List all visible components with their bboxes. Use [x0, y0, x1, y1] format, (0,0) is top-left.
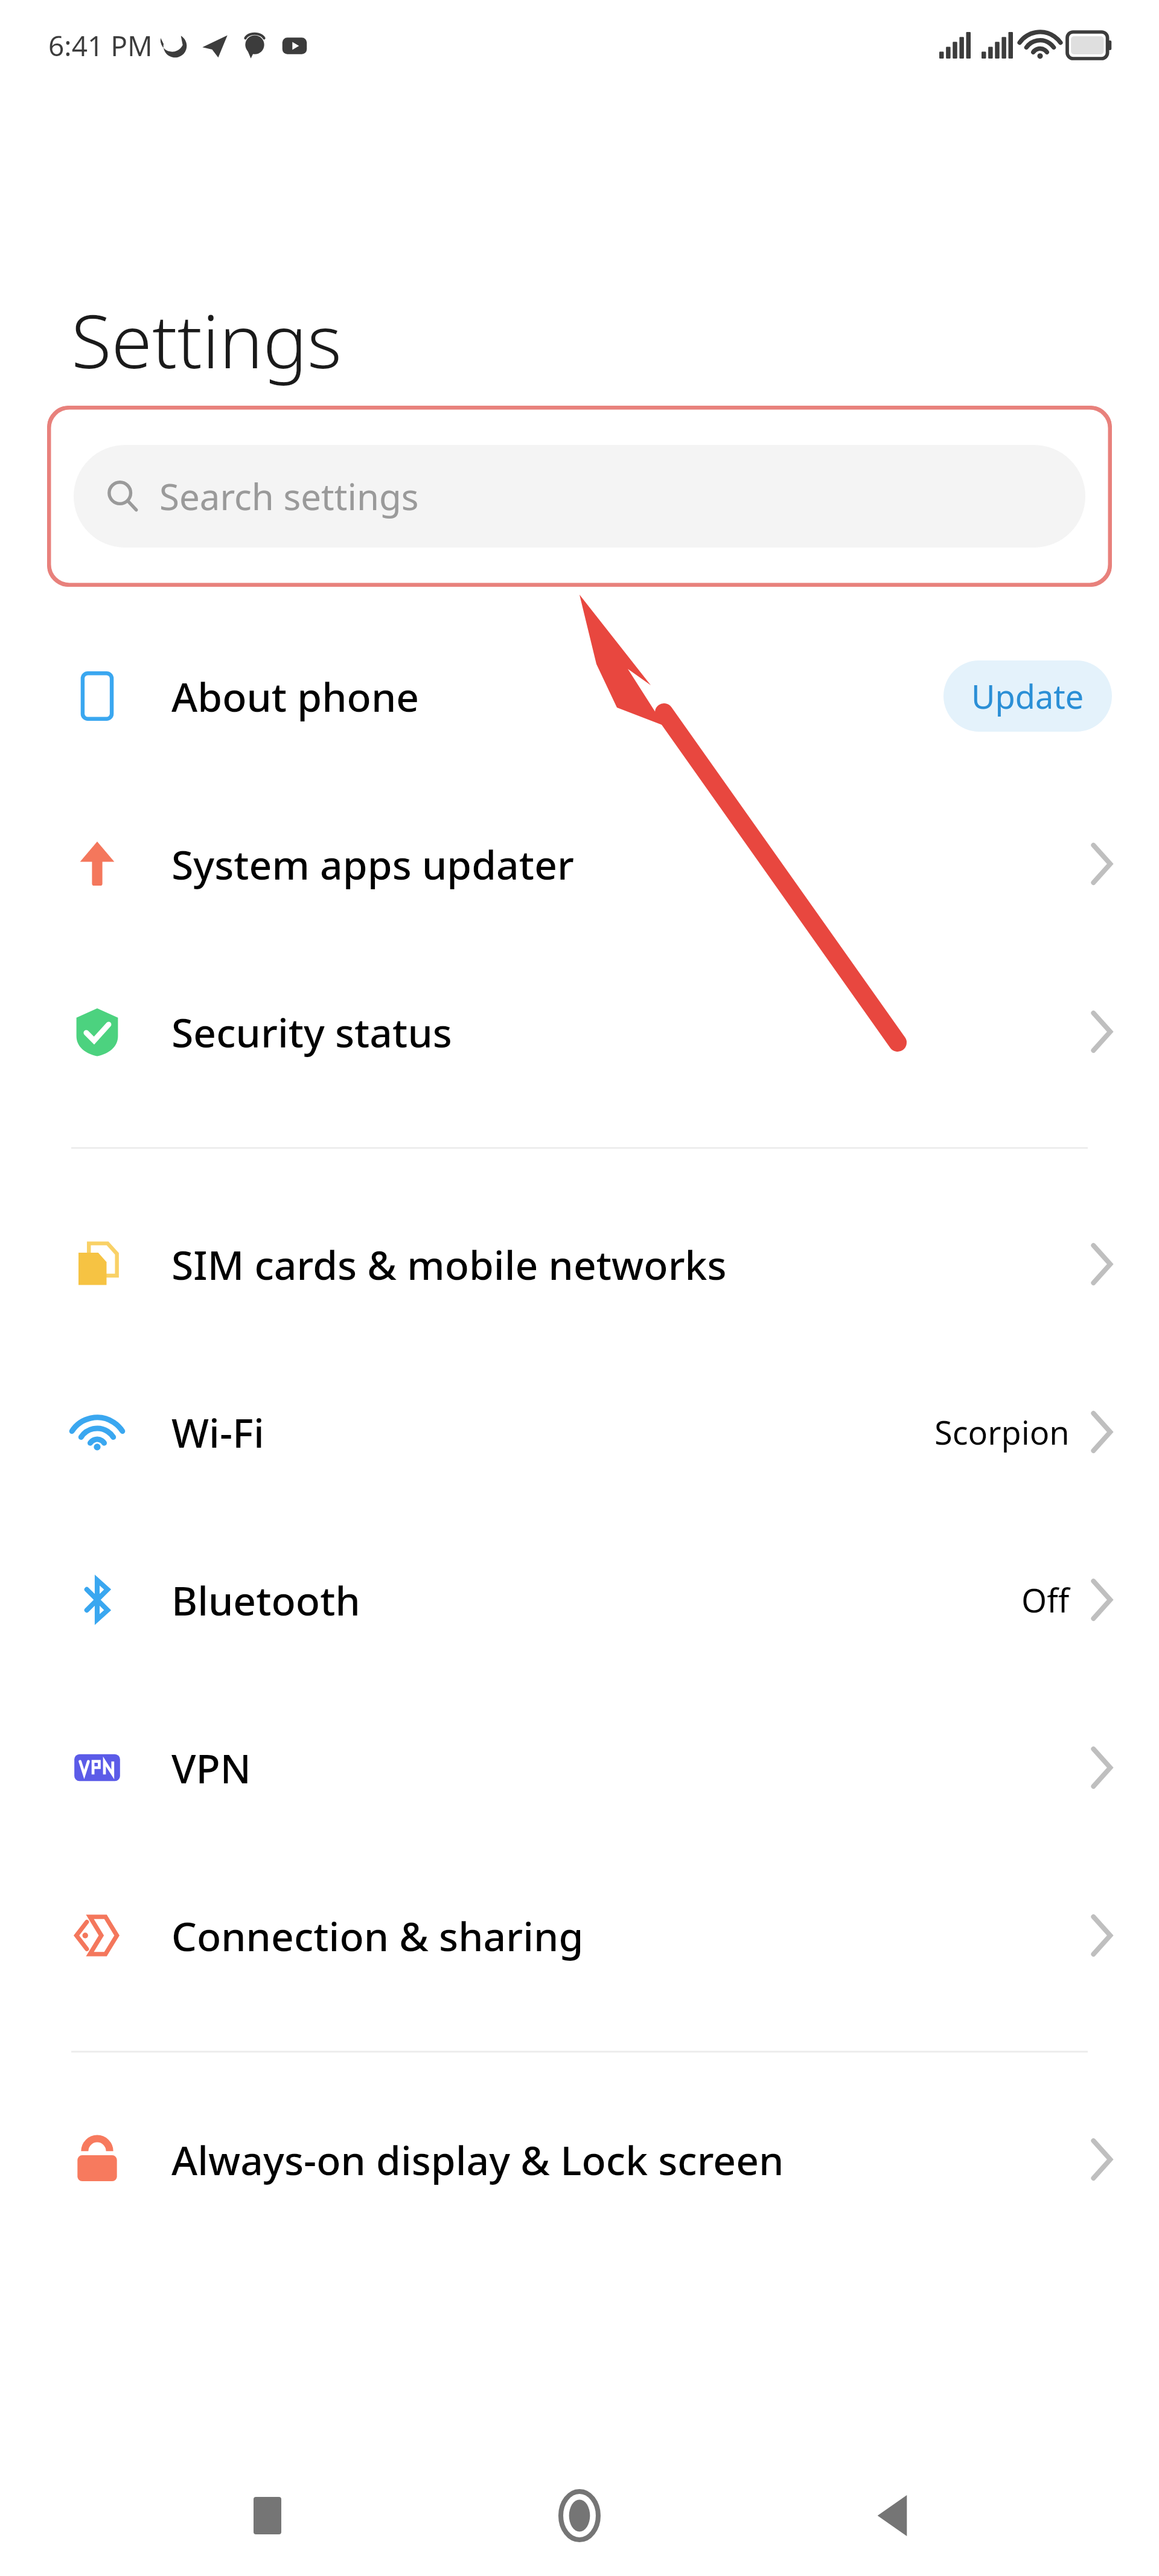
button[interactable]: Security status [0, 948, 1159, 1116]
button[interactable]: Bluetooth [0, 1516, 1159, 1684]
button[interactable]: System apps updater [0, 780, 1159, 948]
staticText: 6:41 PM [48, 27, 153, 65]
button[interactable]: Update [943, 660, 1112, 732]
button[interactable]: Wi-Fi [0, 1348, 1159, 1516]
button[interactable]: Connection & sharing [0, 1852, 1159, 2019]
button[interactable]: VPN [0, 1684, 1159, 1852]
button[interactable]: Always-on display & Lock screen [0, 2084, 1159, 2235]
staticText: Wi-Fi [171, 1405, 264, 1459]
staticText: Security status [171, 1005, 452, 1059]
button[interactable]: Search settings [74, 445, 1085, 548]
button[interactable]: About phone [0, 612, 1159, 780]
staticText: Bluetooth [171, 1573, 360, 1627]
staticText: Settings [71, 290, 342, 390]
button[interactable]: SIM cards & mobile networks [0, 1180, 1159, 1348]
staticText: Scorpion [934, 1410, 1070, 1454]
staticText: Search settings [159, 471, 419, 521]
staticText: Update [971, 674, 1084, 718]
button[interactable]: Back [847, 2470, 937, 2561]
button[interactable]: Recent apps [222, 2470, 313, 2561]
staticText: Connection & sharing [171, 1908, 584, 1963]
button[interactable]: Home [534, 2470, 625, 2561]
staticText: Off [1021, 1577, 1070, 1622]
staticText: System apps updater [171, 837, 574, 891]
staticText: VPN [171, 1740, 252, 1795]
staticText: Always-on display & Lock screen [171, 2132, 784, 2187]
staticText: SIM cards & mobile networks [171, 1237, 727, 1291]
staticText: About phone [171, 669, 420, 723]
